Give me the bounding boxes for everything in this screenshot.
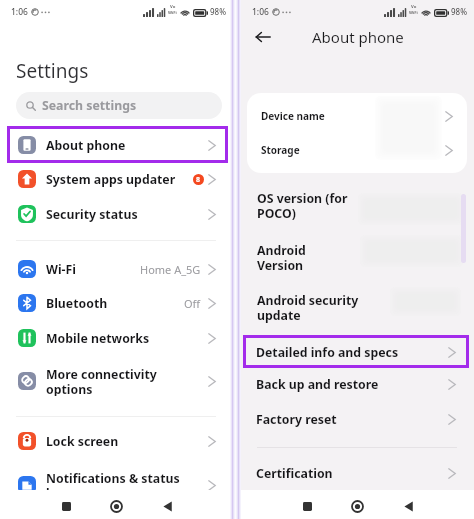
staticText: 1:06 bbox=[11, 6, 28, 18]
staticText: About phone bbox=[46, 137, 126, 154]
staticText: Wi-Fi bbox=[46, 261, 76, 278]
button[interactable]: Lock screen bbox=[0, 426, 233, 456]
staticText: Lock screen bbox=[46, 433, 119, 450]
staticText: Android security update bbox=[257, 292, 359, 324]
staticText: Factory reset bbox=[256, 411, 337, 428]
staticText: More connectivity options bbox=[46, 366, 157, 396]
staticText: Bluetooth bbox=[46, 295, 108, 312]
staticText: About phone bbox=[312, 27, 404, 47]
staticText: Android Version bbox=[257, 242, 306, 274]
staticText: Security status bbox=[46, 206, 138, 223]
button[interactable]: System apps updater bbox=[0, 164, 233, 194]
staticText: Vo bbox=[170, 4, 176, 10]
staticText: Certification bbox=[256, 465, 333, 482]
staticText: Settings bbox=[16, 58, 89, 84]
button[interactable]: About phone bbox=[0, 130, 233, 160]
staticText: Device name bbox=[261, 109, 325, 123]
button[interactable]: Wi-Fi bbox=[0, 254, 233, 284]
staticText: WiFi bbox=[409, 10, 418, 16]
staticText: OS version (for POCO) bbox=[257, 190, 348, 222]
staticText: Mobile networks bbox=[46, 330, 150, 347]
staticText: 98% bbox=[451, 6, 467, 17]
button[interactable]: Recents bbox=[55, 495, 77, 517]
button[interactable]: Android security update bbox=[241, 292, 474, 326]
button[interactable]: Storage bbox=[241, 135, 474, 165]
button[interactable]: OS version (for POCO) bbox=[241, 190, 474, 224]
button[interactable]: Bluetooth bbox=[0, 288, 233, 318]
staticText: Off bbox=[184, 296, 201, 311]
staticText: System apps updater bbox=[46, 171, 176, 188]
staticText: Storage bbox=[261, 143, 300, 157]
button[interactable]: Certification bbox=[241, 460, 474, 487]
button[interactable]: More connectivity options bbox=[0, 366, 233, 396]
staticText: Search settings bbox=[42, 97, 137, 114]
button[interactable]: Factory reset bbox=[241, 406, 474, 433]
button[interactable]: Home bbox=[105, 495, 127, 517]
button[interactable]: Search settings bbox=[16, 92, 222, 119]
button[interactable]: Mobile networks bbox=[0, 323, 233, 353]
button[interactable]: Back bbox=[397, 495, 419, 517]
button[interactable]: Security status bbox=[0, 199, 233, 229]
staticText: Home A_5G bbox=[140, 262, 201, 277]
button[interactable]: Detailed info and specs bbox=[241, 339, 474, 366]
staticText: Vo bbox=[411, 4, 417, 10]
button[interactable]: Back up and restore bbox=[241, 371, 474, 398]
button[interactable]: Notifications & status bar bbox=[0, 470, 233, 500]
staticText: 1:06 bbox=[252, 6, 269, 18]
staticText: Notifications & status bar bbox=[46, 470, 180, 500]
button[interactable]: Home bbox=[346, 495, 368, 517]
staticText: 8 bbox=[196, 175, 201, 185]
staticText: Detailed info and specs bbox=[256, 344, 399, 361]
button[interactable]: Back bbox=[251, 25, 275, 49]
button[interactable]: Back bbox=[156, 495, 178, 517]
button[interactable]: Device name bbox=[241, 101, 474, 131]
button[interactable]: Recents bbox=[296, 495, 318, 517]
button[interactable]: Android Version bbox=[241, 242, 474, 276]
staticText: 98% bbox=[210, 6, 226, 17]
staticText: WiFi bbox=[168, 10, 177, 16]
staticText: Back up and restore bbox=[256, 376, 379, 393]
